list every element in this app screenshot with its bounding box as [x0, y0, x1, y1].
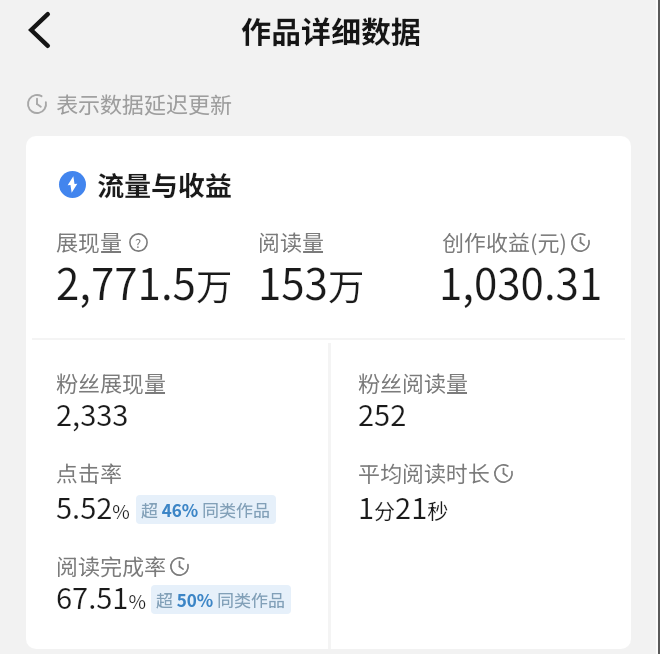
staticText: 创作收益(元) — [442, 225, 567, 257]
staticText: 67.51% — [56, 575, 146, 617]
staticText: 点击率 — [56, 456, 123, 488]
button[interactable]: 返回 — [16, 7, 62, 53]
staticText: 153万 — [258, 251, 364, 312]
button[interactable]: 超 50% 同类作品 — [151, 585, 291, 614]
button[interactable]: 超 46% 同类作品 — [136, 495, 276, 524]
staticText: 1分21秒 — [358, 485, 449, 527]
staticText: 2,771.5万 — [56, 251, 232, 312]
staticText: 展现量 — [56, 225, 123, 257]
staticText: 流量与收益 — [97, 165, 232, 204]
staticText: 平均阅读时长 — [358, 456, 491, 488]
staticText: 5.52% — [56, 485, 130, 527]
staticText: 阅读量 — [258, 225, 325, 257]
staticText: 粉丝阅读量 — [358, 366, 469, 398]
staticText: 作品详细数据 — [241, 8, 421, 51]
staticText: ? — [135, 233, 142, 252]
staticText: 252 — [358, 392, 407, 434]
staticText: 超 50% 同类作品 — [156, 587, 286, 612]
staticText: 2,333 — [56, 392, 129, 434]
staticText: 超 46% 同类作品 — [141, 497, 271, 522]
staticText: 1,030.31 — [439, 251, 603, 312]
staticText: 表示数据延迟更新 — [56, 87, 233, 119]
staticText: 粉丝展现量 — [56, 366, 167, 398]
staticText: 阅读完成率 — [56, 549, 167, 581]
